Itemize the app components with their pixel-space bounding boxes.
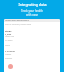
staticText: 7 h 20 m [5,49,15,52]
staticText: Sleep [5,44,10,47]
staticText: Heart rate [5,35,15,38]
staticText: Calories [5,57,13,60]
staticText: Sync in progress, please keep [5,23,32,26]
staticText: Health data permissions [5,19,29,22]
staticText: Weight [5,53,12,56]
button[interactable]: Health data permissions [4,19,60,22]
staticText: with ease [26,13,38,17]
staticText: Steps [5,29,12,32]
staticText: 72 bpm [5,39,13,42]
staticText: Integrating data [18,2,47,7]
staticText: Track your health [21,9,43,13]
staticText: 1,204 [5,32,12,35]
